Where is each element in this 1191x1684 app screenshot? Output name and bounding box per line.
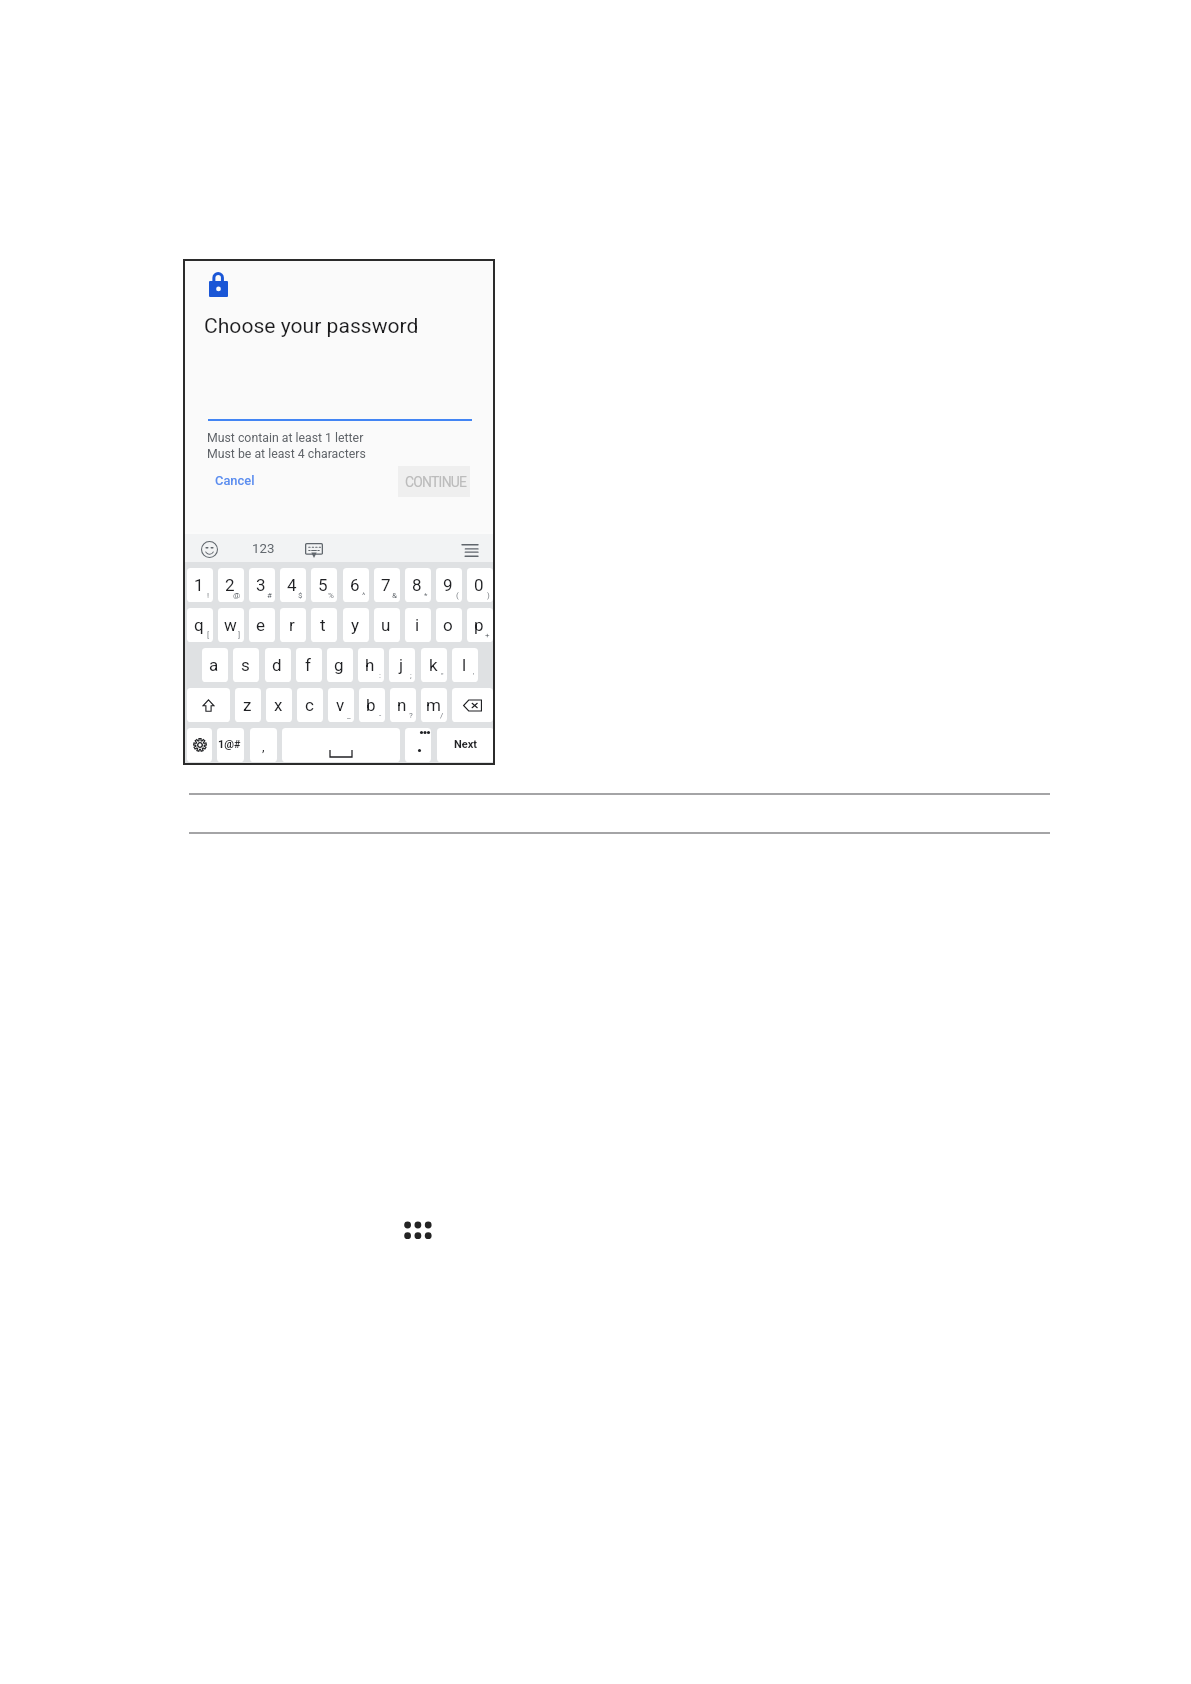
staticText: b xyxy=(366,695,376,715)
button[interactable]: c xyxy=(297,688,323,722)
staticText: ( xyxy=(456,591,459,600)
staticText: _ xyxy=(347,711,351,720)
staticText: Choose your password xyxy=(204,313,419,338)
button[interactable]: p xyxy=(467,608,493,642)
button[interactable]: y xyxy=(343,608,369,642)
staticText: 5 xyxy=(318,575,328,595)
staticText: z xyxy=(243,695,252,715)
button[interactable]: g xyxy=(327,648,353,682)
staticText: + xyxy=(485,631,490,640)
staticText: 8 xyxy=(412,575,422,595)
button[interactable] xyxy=(452,688,493,722)
button[interactable]: w xyxy=(218,608,244,642)
button[interactable]: b xyxy=(359,688,385,722)
button[interactable] xyxy=(187,688,230,722)
button[interactable]: n xyxy=(390,688,416,722)
button[interactable]: 4 xyxy=(280,568,306,602)
staticText: ; xyxy=(410,671,412,680)
button[interactable] xyxy=(405,728,431,762)
button[interactable]: , xyxy=(250,728,277,762)
staticText: ) xyxy=(487,591,490,600)
button[interactable]: 6 xyxy=(343,568,369,602)
staticText: k xyxy=(429,655,438,675)
button[interactable]: Menu xyxy=(462,544,478,557)
staticText: Must be at least 4 characters xyxy=(207,447,366,461)
button[interactable]: Hide keyboard xyxy=(305,543,323,558)
button[interactable]: Cancel xyxy=(205,466,265,495)
staticText: g xyxy=(334,655,344,675)
staticText: [ xyxy=(207,631,210,640)
button[interactable]: q xyxy=(187,608,213,642)
button[interactable] xyxy=(282,728,400,762)
staticText: j xyxy=(399,655,404,675)
staticText: & xyxy=(392,591,397,600)
staticText: Must contain at least 1 letter xyxy=(207,431,364,445)
staticText: q xyxy=(194,615,204,635)
button[interactable]: d xyxy=(265,648,291,682)
button[interactable]: v xyxy=(328,688,354,722)
staticText: l xyxy=(462,655,467,675)
button[interactable]: 8 xyxy=(405,568,431,602)
button[interactable]: u xyxy=(374,608,400,642)
staticText: ? xyxy=(409,711,413,720)
staticText: h xyxy=(365,655,375,675)
button[interactable]: h xyxy=(358,648,384,682)
staticText: y xyxy=(351,615,360,635)
staticText: r xyxy=(289,615,295,635)
button[interactable]: m xyxy=(421,688,447,722)
staticText: 3 xyxy=(256,575,266,595)
button[interactable]: CONTINUE xyxy=(398,466,470,497)
staticText: ] xyxy=(238,631,241,640)
button[interactable]: 2 xyxy=(218,568,244,602)
staticText: , xyxy=(262,739,265,754)
button[interactable]: 7 xyxy=(374,568,400,602)
button[interactable]: s xyxy=(233,648,259,682)
staticText: p xyxy=(474,615,484,635)
button[interactable]: t xyxy=(311,608,337,642)
button[interactable]: Apps xyxy=(398,1214,430,1238)
button[interactable]: Emoji xyxy=(201,541,218,558)
staticText: # xyxy=(267,591,272,600)
button[interactable]: 0 xyxy=(467,568,493,602)
staticText: % xyxy=(328,591,334,600)
button[interactable]: 5 xyxy=(311,568,337,602)
button[interactable]: Next xyxy=(437,728,494,762)
staticText: @ xyxy=(233,591,241,600)
staticText: $ xyxy=(298,591,303,600)
staticText: f xyxy=(305,655,311,675)
button[interactable]: 1@# xyxy=(217,728,244,762)
button[interactable]: f xyxy=(296,648,322,682)
staticText: 9 xyxy=(443,575,453,595)
button[interactable]: o xyxy=(436,608,462,642)
button[interactable]: j xyxy=(389,648,415,682)
button[interactable]: e xyxy=(249,608,275,642)
staticText: n xyxy=(397,695,407,715)
button[interactable]: 9 xyxy=(436,568,462,602)
staticText: 0 xyxy=(474,575,484,595)
staticText: 4 xyxy=(287,575,297,595)
staticText: ^ xyxy=(362,591,366,600)
button[interactable]: 3 xyxy=(249,568,275,602)
staticText: a xyxy=(209,655,219,675)
button[interactable]: a xyxy=(202,648,228,682)
button[interactable]: r xyxy=(280,608,306,642)
staticText: 1@# xyxy=(218,738,241,751)
button[interactable] xyxy=(187,728,212,762)
staticText: - xyxy=(379,711,382,720)
staticText: Cancel xyxy=(215,473,255,488)
button[interactable]: 123 xyxy=(252,541,275,557)
staticText: c xyxy=(305,695,314,715)
button[interactable]: x xyxy=(266,688,292,722)
button[interactable]: i xyxy=(405,608,431,642)
button[interactable]: z xyxy=(235,688,261,722)
button[interactable]: l xyxy=(452,648,478,682)
button[interactable]: k xyxy=(421,648,447,682)
staticText: ! xyxy=(207,591,210,600)
staticText: CONTINUE xyxy=(405,474,467,490)
staticText: Next xyxy=(454,738,478,751)
staticText: 7 xyxy=(381,575,391,595)
button[interactable]: 1 xyxy=(187,568,213,602)
staticText: u xyxy=(381,615,391,635)
staticText: * xyxy=(424,591,428,600)
staticText: 6 xyxy=(350,575,360,595)
